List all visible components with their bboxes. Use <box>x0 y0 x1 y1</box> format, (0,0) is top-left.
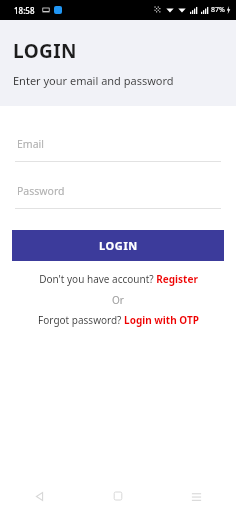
button[interactable]: Password <box>0 180 236 209</box>
button[interactable]: Recent apps <box>157 480 236 512</box>
staticText: Password <box>17 184 65 198</box>
staticText: Email <box>17 137 44 151</box>
staticText: LOGIN <box>99 238 138 253</box>
button[interactable]: Email <box>0 133 236 162</box>
staticText: Or <box>112 293 124 307</box>
button[interactable]: Forgot password? Login with OTP <box>0 313 236 327</box>
staticText: Enter your email and password <box>13 73 174 88</box>
button[interactable]: Back <box>0 480 78 512</box>
staticText: Forgot password? Login with OTP <box>38 313 199 327</box>
staticText: 18:58 <box>14 5 35 16</box>
button[interactable]: LOGIN <box>12 230 224 261</box>
staticText: LOGIN <box>13 38 77 64</box>
button[interactable]: Don't you have account? Register <box>0 272 236 286</box>
staticText: Don't you have account? Register <box>39 272 198 286</box>
staticText: 87% <box>211 5 225 15</box>
